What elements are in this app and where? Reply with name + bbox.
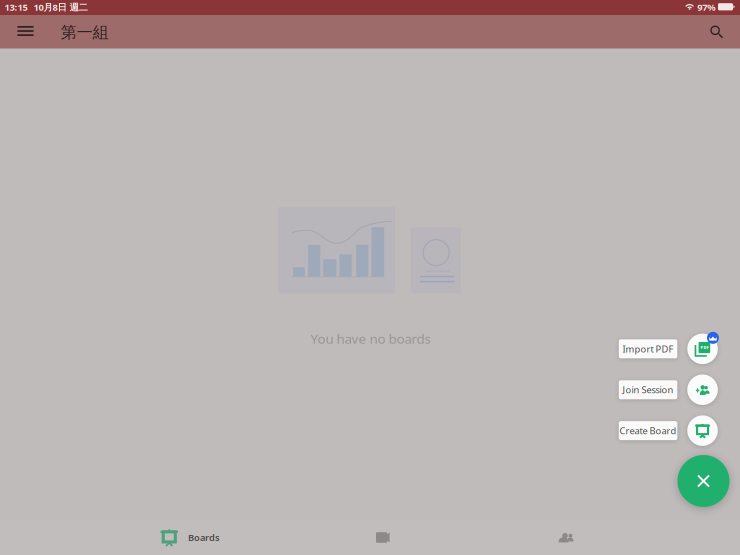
button[interactable]: Boards [160,520,224,555]
staticText: Import PDF [622,343,673,355]
staticText: You have no boards [310,330,430,347]
button[interactable]: Menu [8,17,43,45]
button[interactable]: Contacts [546,520,586,555]
staticText: Join Session [622,384,673,396]
button[interactable]: Create Board [619,415,718,446]
button[interactable]: Join Session [619,374,718,405]
staticText: Boards [188,531,220,544]
button[interactable]: Meetings [364,520,404,555]
button[interactable]: Close menu [677,455,729,507]
button[interactable]: Import PDF [619,334,718,364]
staticText: 97% [697,1,715,13]
button[interactable]: Search [701,16,732,47]
staticText: 10月8日 週二 [33,1,87,13]
staticText: 第一組 [61,23,109,42]
staticText: PDF [700,345,708,350]
staticText: 13:15 [5,1,28,13]
staticText: Create Board [619,424,676,437]
